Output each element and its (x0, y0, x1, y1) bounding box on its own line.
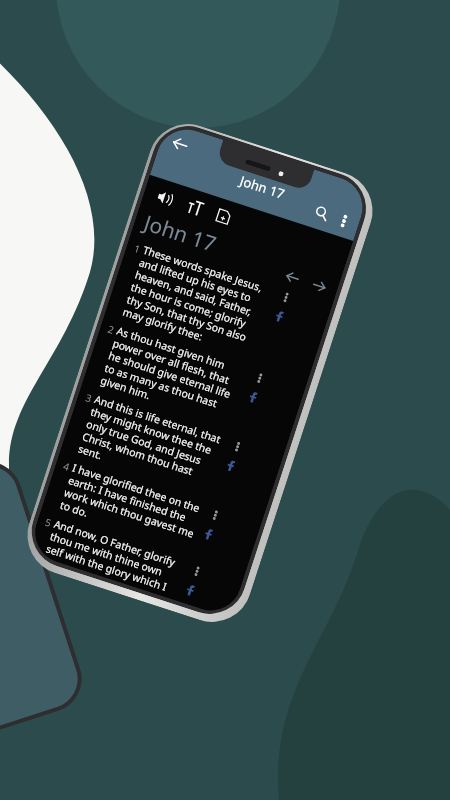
button[interactable]: 3 (60, 384, 285, 519)
button[interactable]: Verse options (205, 504, 225, 525)
staticText: 2 (106, 322, 116, 337)
staticText: 3 (84, 390, 94, 405)
button[interactable]: Share on Facebook (199, 523, 219, 544)
button[interactable]: Add note (207, 200, 240, 233)
button[interactable]: Share on Facebook (269, 306, 290, 326)
staticText: John 17 (140, 208, 220, 259)
staticText: And this is life eternal, that they migh… (77, 392, 226, 497)
button[interactable]: Search (305, 196, 338, 229)
staticText: 1 (132, 241, 142, 256)
button[interactable]: 4 (41, 452, 263, 575)
staticText: John 17 (238, 171, 287, 203)
staticText: 5 (43, 515, 53, 530)
button[interactable]: Share on Facebook (221, 455, 241, 475)
button[interactable]: Text size (179, 191, 211, 224)
button[interactable]: Verse options (276, 287, 296, 307)
button[interactable]: Back (161, 125, 199, 162)
button[interactable]: Share on Facebook (243, 386, 263, 407)
staticText: As thou hast given him power over all fl… (99, 324, 249, 428)
button[interactable]: Share on Facebook (180, 580, 201, 600)
button[interactable]: More options (329, 206, 359, 236)
button[interactable]: 1 (104, 235, 334, 382)
button[interactable]: Next chapter (305, 272, 333, 299)
button[interactable]: 5 (27, 509, 245, 618)
staticText: 4 (62, 459, 72, 474)
staticText: These words spake Jesus, and lifted up h… (121, 243, 275, 360)
staticText: And now, O Father, glorify thou me with … (44, 517, 186, 597)
button[interactable]: Verse options (249, 367, 270, 388)
button[interactable]: Verse options (227, 436, 247, 456)
button[interactable]: 2 (82, 315, 308, 450)
button[interactable]: Listen (148, 181, 181, 214)
button[interactable]: Previous chapter (278, 263, 306, 291)
staticText: I have glorified thee on the earth: I ha… (58, 461, 204, 553)
button[interactable]: Verse options (187, 561, 207, 581)
